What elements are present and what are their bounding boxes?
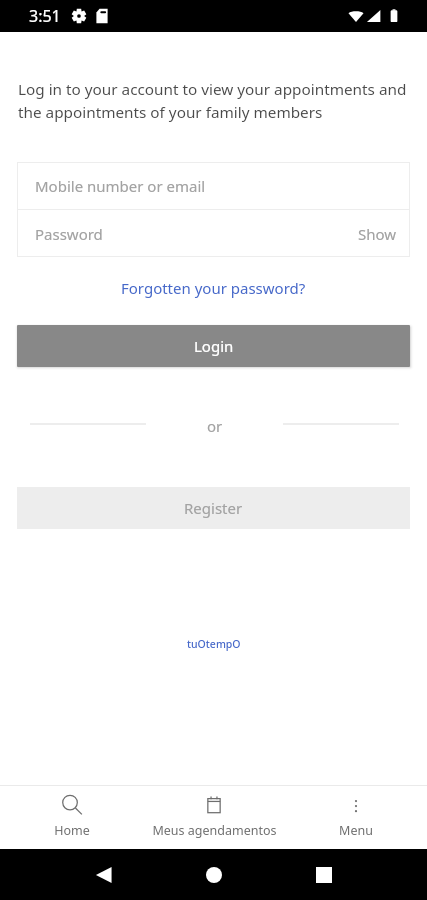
staticText: Menu: [339, 822, 373, 839]
staticText: Forgotten your password?: [121, 278, 306, 298]
staticText: Password: [35, 224, 103, 244]
button[interactable]: Password: [17, 210, 410, 257]
button[interactable]: Home: [0, 786, 143, 849]
button[interactable]: Recent apps: [298, 849, 349, 900]
staticText: Show: [358, 224, 397, 244]
button[interactable]: Login: [17, 325, 410, 367]
staticText: Mobile number or email: [35, 176, 206, 196]
staticText: Login: [194, 336, 234, 356]
staticText: Home: [54, 822, 90, 839]
staticText: 3:51: [29, 5, 61, 27]
button[interactable]: Forgotten your password?: [115, 275, 312, 301]
staticText: Meus agendamentos: [152, 822, 277, 839]
button[interactable]: Menu: [285, 786, 427, 849]
staticText: tuOtempO: [187, 637, 241, 651]
button[interactable]: Meus agendamentos: [143, 786, 285, 849]
button[interactable]: Home: [188, 849, 239, 900]
button[interactable]: Register: [17, 487, 410, 529]
button[interactable]: Back: [78, 849, 129, 900]
staticText: Log in to your account to view your appo…: [18, 79, 413, 123]
button[interactable]: Mobile number or email: [17, 162, 410, 209]
staticText: or: [207, 416, 223, 432]
staticText: Register: [184, 498, 243, 518]
